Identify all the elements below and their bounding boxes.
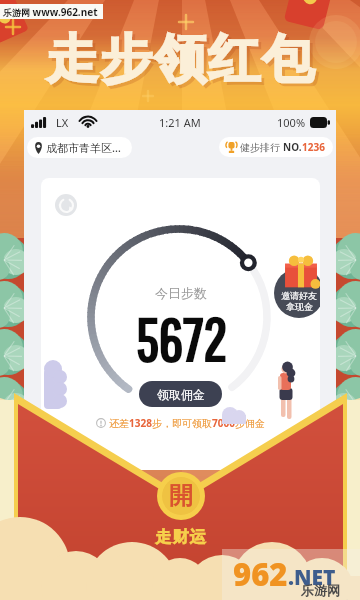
staticText: 邀请好友 [281,290,317,301]
staticText: 7000 [212,416,235,430]
staticText: 步，即可领取 [152,417,212,430]
staticText: 走步领红包 [48,30,318,96]
staticText: 開 [169,481,193,511]
staticText: 乐游网 [3,7,30,18]
staticText: .NET [288,563,336,592]
staticText: www.962.net [30,5,98,19]
button[interactable]: 邀请好友 [274,256,320,318]
button[interactable]: 领取佣金 [139,381,222,407]
staticText: 乐游网 [301,582,340,598]
staticText: 健步排行 [240,140,283,154]
staticText: 今日步数 [155,285,207,301]
staticText: 走步领红包 [45,27,315,93]
staticText: NO. [283,140,302,154]
staticText: 1328 [129,416,152,430]
staticText: 5672 [135,305,226,374]
staticText: 拿现金 [286,301,313,312]
staticText: 成都市青羊区… [46,140,121,155]
staticText: LX [56,115,69,130]
staticText: 领取佣金 [157,387,205,402]
staticText: 还差 [109,417,129,430]
button[interactable]: Refresh [55,194,77,216]
staticText: 1236 [302,140,325,154]
staticText: 1:21 AM [159,115,201,130]
staticText: 走财运 [155,527,206,547]
button[interactable]: 开 [157,472,205,520]
staticText: 962 [233,553,288,595]
staticText: 步佣金 [235,417,265,430]
button[interactable]: 成都市青羊区… [27,137,132,158]
button[interactable]: 健步排行 [219,137,333,157]
staticText: 100% [277,115,306,130]
